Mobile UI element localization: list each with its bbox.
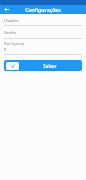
staticText: Senha (4, 30, 16, 35)
button[interactable]: Nível Segurança (4, 39, 82, 55)
button[interactable]: Senha (4, 26, 82, 39)
button[interactable]: Back (2, 5, 11, 14)
button[interactable]: Salvar (4, 60, 82, 71)
button[interactable]: Usuário (4, 14, 82, 26)
staticText: Usuário (4, 18, 19, 23)
staticText: Nível Segurança (4, 42, 25, 46)
staticText: 0 (4, 47, 7, 52)
staticText: Salvar (43, 63, 57, 69)
staticText: Configurações (25, 6, 61, 13)
